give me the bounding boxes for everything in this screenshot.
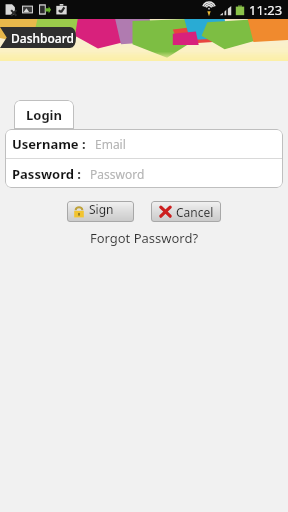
button[interactable]: Cancel bbox=[151, 201, 221, 222]
button[interactable]: Password : bbox=[5, 159, 283, 188]
staticText: Dashboard bbox=[11, 30, 74, 46]
staticText: Username : bbox=[12, 135, 86, 153]
staticText: Login bbox=[26, 106, 62, 124]
staticText: Password : bbox=[12, 165, 81, 183]
button[interactable]: Dashboard bbox=[0, 27, 76, 48]
staticText: Sign In bbox=[89, 201, 128, 222]
button[interactable]: Login bbox=[14, 100, 74, 129]
staticText: Cancel bbox=[176, 204, 214, 220]
staticText: Password bbox=[90, 166, 145, 182]
staticText: Forgot Password? bbox=[0, 229, 288, 247]
staticText: Email bbox=[95, 136, 126, 152]
button[interactable]: Sign In bbox=[67, 201, 134, 222]
button[interactable]: Username : bbox=[5, 129, 283, 158]
staticText: 11:23 bbox=[249, 1, 283, 19]
